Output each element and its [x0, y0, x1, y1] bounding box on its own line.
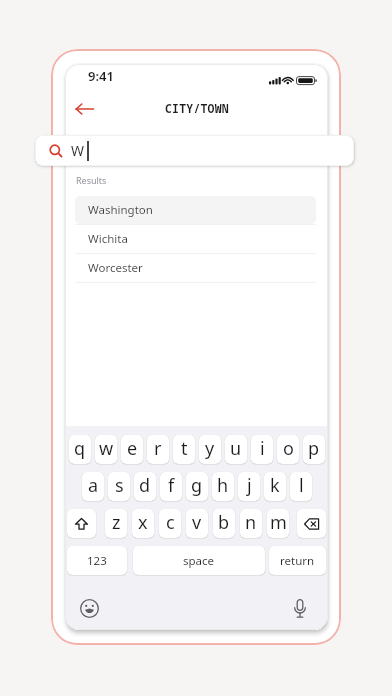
- staticText: space: [183, 553, 215, 569]
- button[interactable]: e: [121, 435, 143, 464]
- staticText: z: [112, 510, 121, 535]
- staticText: a: [88, 473, 99, 498]
- button[interactable]: z: [105, 509, 127, 538]
- button[interactable]: h: [212, 472, 234, 501]
- staticText: c: [166, 510, 175, 535]
- button[interactable]: space: [133, 546, 265, 575]
- button[interactable]: k: [264, 472, 286, 501]
- staticText: w: [99, 436, 114, 461]
- staticText: v: [192, 510, 202, 535]
- button[interactable]: return: [269, 546, 326, 575]
- button[interactable]: b: [213, 509, 235, 538]
- button[interactable]: y: [199, 435, 221, 464]
- button[interactable]: q: [69, 435, 91, 464]
- staticText: k: [270, 473, 280, 498]
- button[interactable]: [294, 599, 306, 619]
- button[interactable]: Washington: [75, 196, 316, 224]
- staticText: x: [138, 510, 148, 535]
- button[interactable]: Worcester: [75, 254, 316, 282]
- staticText: r: [154, 436, 162, 461]
- button[interactable]: n: [240, 509, 262, 538]
- button[interactable]: Wichita: [75, 225, 316, 253]
- staticText: CITY/TOWN: [165, 101, 229, 117]
- staticText: f: [168, 473, 175, 498]
- staticText: return: [280, 553, 315, 569]
- button[interactable]: [67, 509, 96, 538]
- button[interactable]: w: [95, 435, 117, 464]
- button[interactable]: v: [186, 509, 208, 538]
- button[interactable]: g: [186, 472, 208, 501]
- button[interactable]: 123: [67, 546, 127, 575]
- button[interactable]: a: [82, 472, 104, 501]
- staticText: Washington: [88, 202, 153, 218]
- button[interactable]: m: [267, 509, 289, 538]
- staticText: s: [115, 473, 124, 498]
- staticText: 9:41: [88, 67, 114, 85]
- staticText: m: [270, 510, 287, 535]
- staticText: y: [205, 436, 215, 461]
- button[interactable]: o: [277, 435, 299, 464]
- staticText: Worcester: [88, 260, 143, 276]
- staticText: e: [127, 436, 138, 461]
- staticText: o: [283, 436, 294, 461]
- button[interactable]: t: [173, 435, 195, 464]
- staticText: t: [181, 436, 188, 461]
- button[interactable]: c: [159, 509, 181, 538]
- staticText: b: [218, 510, 230, 535]
- staticText: g: [191, 473, 203, 498]
- staticText: n: [245, 510, 257, 535]
- button[interactable]: x: [132, 509, 154, 538]
- button[interactable]: f: [160, 472, 182, 501]
- staticText: p: [308, 436, 320, 461]
- staticText: 123: [87, 553, 107, 569]
- staticText: j: [247, 473, 252, 498]
- button[interactable]: l: [290, 472, 312, 501]
- button[interactable]: u: [225, 435, 247, 464]
- button[interactable]: [75, 102, 95, 116]
- staticText: u: [230, 436, 242, 461]
- button[interactable]: p: [303, 435, 325, 464]
- button[interactable]: j: [238, 472, 260, 501]
- staticText: i: [260, 436, 265, 461]
- staticText: l: [299, 473, 304, 498]
- staticText: h: [217, 473, 229, 498]
- button[interactable]: W: [35, 135, 354, 166]
- staticText: d: [139, 473, 151, 498]
- staticText: Results: [76, 174, 107, 186]
- button[interactable]: d: [134, 472, 156, 501]
- staticText: q: [74, 436, 86, 461]
- button[interactable]: i: [251, 435, 273, 464]
- button[interactable]: [80, 599, 99, 618]
- staticText: Wichita: [88, 231, 128, 247]
- button[interactable]: [297, 509, 326, 538]
- button[interactable]: s: [108, 472, 130, 501]
- button[interactable]: r: [147, 435, 169, 464]
- staticText: W: [71, 141, 85, 160]
